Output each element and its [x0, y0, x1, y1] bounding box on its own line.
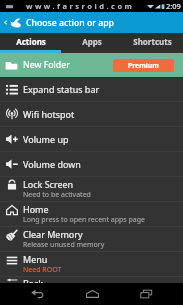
button[interactable]: Clear Memory — [0, 227, 183, 251]
button[interactable]: Wifi hotspot — [0, 102, 183, 126]
button[interactable]: Menu — [0, 252, 183, 276]
staticText: Wifi hotspot — [23, 108, 75, 120]
staticText: Volume up — [23, 133, 69, 145]
staticText: Menu — [23, 253, 48, 265]
staticText: Lock Screen — [23, 178, 74, 190]
staticText: Premium — [128, 61, 159, 70]
button[interactable]: Volume up — [0, 127, 183, 151]
staticText: Release unused memory — [23, 240, 105, 250]
staticText: Shortcuts — [133, 36, 172, 47]
staticText: Clear Memory — [23, 228, 83, 240]
button[interactable]: Expand status bar — [0, 77, 183, 101]
button[interactable]: Recent apps — [129, 283, 163, 305]
staticText: New Folder — [23, 59, 70, 71]
staticText: Need ROOT — [23, 265, 62, 275]
button[interactable]: Shortcuts — [122, 33, 183, 50]
staticText: Expand status bar — [23, 83, 100, 95]
button[interactable]: Home — [75, 283, 109, 305]
staticText: Actions — [16, 36, 46, 47]
staticText: Back — [23, 277, 44, 283]
staticText: www.farsroid.com — [26, 1, 135, 11]
button[interactable]: Volume down — [0, 152, 183, 176]
staticText: Apps — [82, 36, 102, 47]
button[interactable]: Actions — [0, 33, 61, 50]
button[interactable]: Back — [20, 283, 54, 305]
button[interactable]: Home — [0, 202, 183, 226]
staticText: Need to be activated — [23, 190, 91, 200]
button[interactable]: Apps — [61, 33, 122, 50]
staticText: Volume down — [23, 158, 81, 170]
staticText: Choose action or app — [26, 17, 114, 29]
button[interactable]: Choose action or app — [0, 12, 183, 33]
button[interactable]: Back — [0, 277, 183, 283]
staticText: Home — [23, 203, 49, 215]
staticText: Long press to open recent apps page — [23, 215, 145, 225]
button[interactable]: Lock Screen — [0, 177, 183, 201]
button[interactable]: Premium — [113, 59, 174, 72]
staticText: 2:09 — [166, 1, 181, 11]
